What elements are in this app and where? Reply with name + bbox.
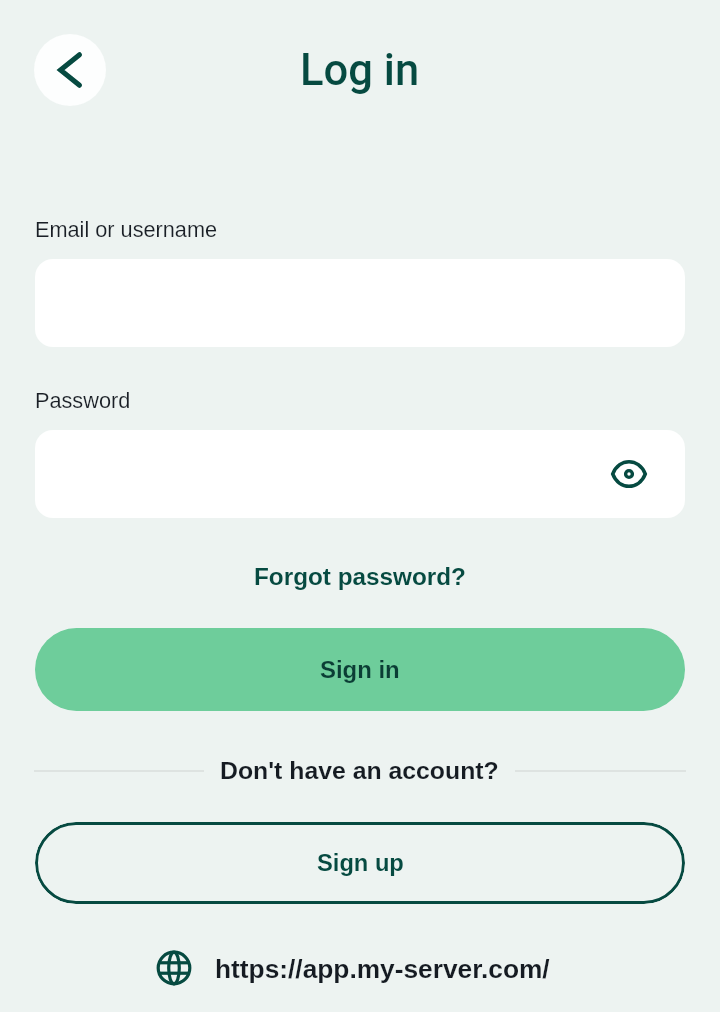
staticText: Password	[35, 388, 131, 412]
button[interactable]: Back	[34, 34, 106, 106]
staticText: Sign up	[317, 850, 404, 876]
staticText: Log in	[300, 45, 420, 96]
button[interactable]: Show password	[35, 430, 685, 518]
staticText: Email or username	[35, 217, 218, 241]
button[interactable]: Forgot password?	[254, 563, 466, 590]
staticText: https://app.my-server.com/	[215, 954, 550, 983]
button[interactable]: https://app.my-server.com/	[156, 940, 550, 996]
staticText: Sign in	[320, 656, 400, 683]
staticText: Don't have an account?	[220, 757, 499, 785]
button[interactable]: Sign up	[35, 822, 685, 904]
button[interactable]: Show password	[601, 446, 657, 502]
button[interactable]: Sign in	[35, 628, 685, 711]
